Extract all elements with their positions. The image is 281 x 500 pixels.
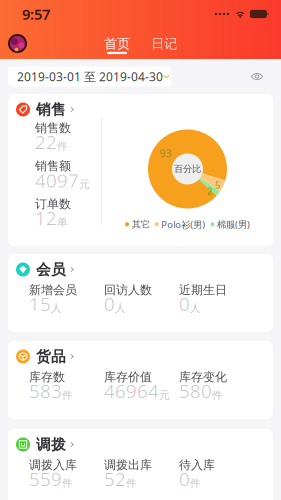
staticText: 件 [57,139,68,153]
staticText: 销售 [36,100,66,118]
staticText: 件 [62,388,73,402]
staticText: 件 [190,476,201,490]
staticText: 22 [35,129,57,154]
staticText: 库存价值 [104,370,152,384]
staticText: 5 [215,179,220,191]
staticText: 库存变化 [179,370,227,384]
staticText: 棉服(男) [217,218,250,230]
staticText: Polo衫(男) [161,218,205,230]
button[interactable]: 货品 [16,349,273,364]
staticText: 回访人数 [104,283,152,297]
staticText: 日记 [151,35,177,52]
staticText: 会员 [36,260,66,278]
staticText: 订单数 [35,197,71,211]
staticText: 0 [104,291,115,316]
staticText: 待入库 [179,458,215,472]
staticText: 4097 [35,168,79,193]
staticText: 人 [190,301,201,315]
button[interactable]: 日记 [145,28,183,59]
button[interactable]: 调拨 [16,437,273,452]
staticText: 12 [35,205,57,230]
staticText: 93 [159,146,171,160]
staticText: 人 [51,301,62,315]
staticText: 46964 [104,378,159,403]
button[interactable]: Profile [8,34,27,53]
staticText: 调拨出库 [104,458,152,472]
staticText: 近期生日 [179,283,227,297]
staticText: 元 [159,388,170,402]
staticText: 2019-03-01 至 2019-04-30 [17,68,163,84]
staticText: 9:57 [22,4,50,24]
staticText: 件 [62,476,73,490]
staticText: 其它 [132,218,150,230]
staticText: 调拨 [36,435,66,453]
button[interactable]: Toggle visibility [244,66,270,86]
staticText: 销售额 [35,159,71,173]
button[interactable]: 销售 [16,102,273,117]
staticText: 人 [115,301,126,315]
staticText: 库存数 [29,370,65,384]
staticText: 15 [29,291,51,316]
staticText: 0 [179,291,190,316]
staticText: 0 [179,466,190,491]
staticText: 单 [57,215,68,229]
staticText: 销售数 [35,121,71,135]
staticText: 52 [104,466,126,491]
staticText: 百分比 [174,163,201,175]
button[interactable]: 首页 [98,28,136,59]
staticText: 583 [29,378,62,403]
button[interactable]: 会员 [16,262,273,277]
staticText: 559 [29,466,62,491]
staticText: 580 [179,378,212,403]
staticText: 元 [79,178,90,191]
staticText: 货品 [36,347,66,365]
staticText: 调拨入库 [29,458,77,472]
staticText: 新增会员 [29,283,77,297]
staticText: 件 [212,388,223,402]
button[interactable]: 2019-03-01 至 2019-04-30 [8,66,171,86]
staticText: 件 [126,476,137,490]
staticText: 2 [207,185,212,197]
staticText: 首页 [104,35,130,52]
